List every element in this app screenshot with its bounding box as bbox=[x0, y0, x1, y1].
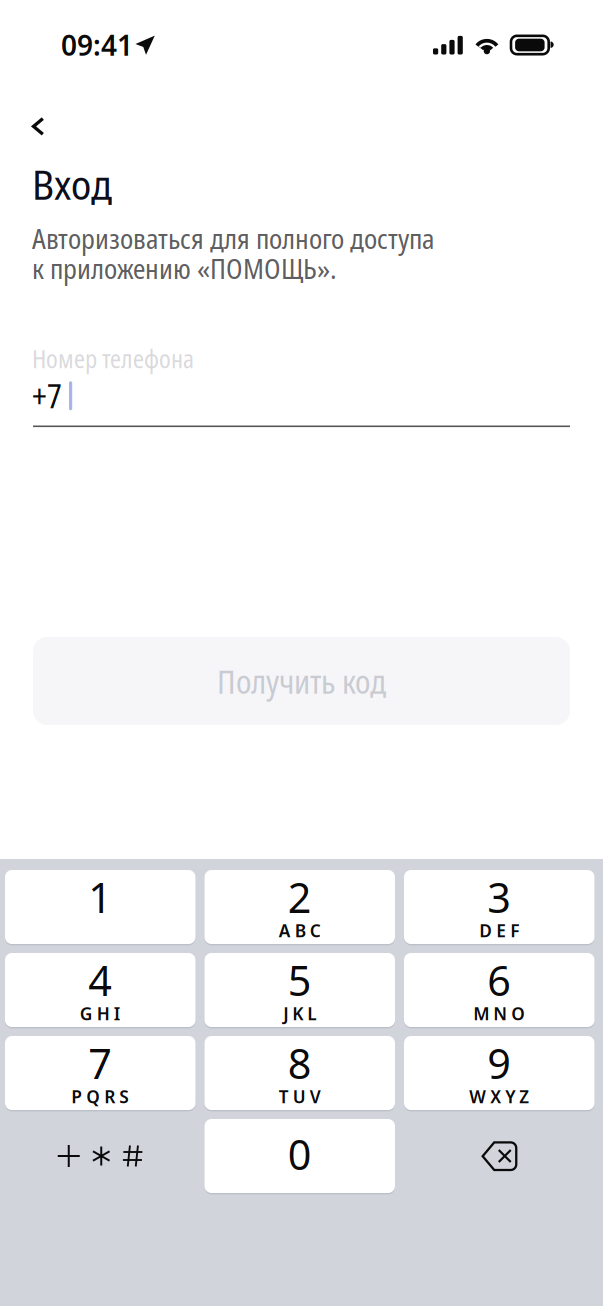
button[interactable]: Back bbox=[19, 105, 56, 148]
staticText: Авторизоваться для полного доступа bbox=[32, 219, 434, 257]
staticText: Вход bbox=[32, 157, 112, 211]
staticText: 09:41 bbox=[61, 26, 133, 64]
button[interactable]: Plus, star, hash bbox=[5, 1119, 195, 1193]
staticText: 4 bbox=[88, 952, 112, 1008]
button[interactable]: 1 bbox=[5, 870, 195, 944]
staticText: D E F bbox=[479, 917, 519, 943]
staticText: 5 bbox=[288, 952, 312, 1008]
staticText: J K L bbox=[283, 1000, 316, 1026]
staticText: A B C bbox=[279, 917, 321, 943]
button[interactable]: 5 bbox=[204, 953, 395, 1027]
staticText: 9 bbox=[487, 1035, 511, 1091]
staticText: 1 bbox=[88, 869, 112, 925]
button[interactable]: Delete bbox=[404, 1119, 594, 1193]
button[interactable]: 7 bbox=[5, 1036, 195, 1110]
button[interactable]: 6 bbox=[404, 953, 594, 1027]
button[interactable]: 8 bbox=[204, 1036, 395, 1110]
staticText: Номер телефона bbox=[32, 342, 194, 376]
staticText: M N O bbox=[473, 1000, 525, 1026]
staticText: 8 bbox=[288, 1035, 312, 1091]
button[interactable]: 3 bbox=[404, 870, 594, 944]
staticText: G H I bbox=[80, 1000, 121, 1026]
button[interactable]: Получить код bbox=[33, 637, 570, 725]
button[interactable]: 4 bbox=[5, 953, 195, 1027]
staticText: Получить код bbox=[217, 659, 386, 703]
button[interactable]: 2 bbox=[204, 870, 395, 944]
staticText: 6 bbox=[487, 952, 511, 1008]
button[interactable]: 0 bbox=[204, 1119, 395, 1193]
button[interactable]: 9 bbox=[404, 1036, 594, 1110]
staticText: +7 bbox=[32, 374, 62, 418]
staticText: к приложению «ПОМОЩЬ». bbox=[32, 249, 337, 287]
staticText: 7 bbox=[88, 1035, 112, 1091]
staticText: 3 bbox=[487, 869, 511, 925]
staticText: 2 bbox=[288, 869, 312, 925]
staticText: T U V bbox=[279, 1083, 321, 1109]
staticText: W X Y Z bbox=[469, 1083, 529, 1109]
staticText: P Q R S bbox=[71, 1083, 129, 1109]
staticText: 0 bbox=[288, 1126, 312, 1182]
